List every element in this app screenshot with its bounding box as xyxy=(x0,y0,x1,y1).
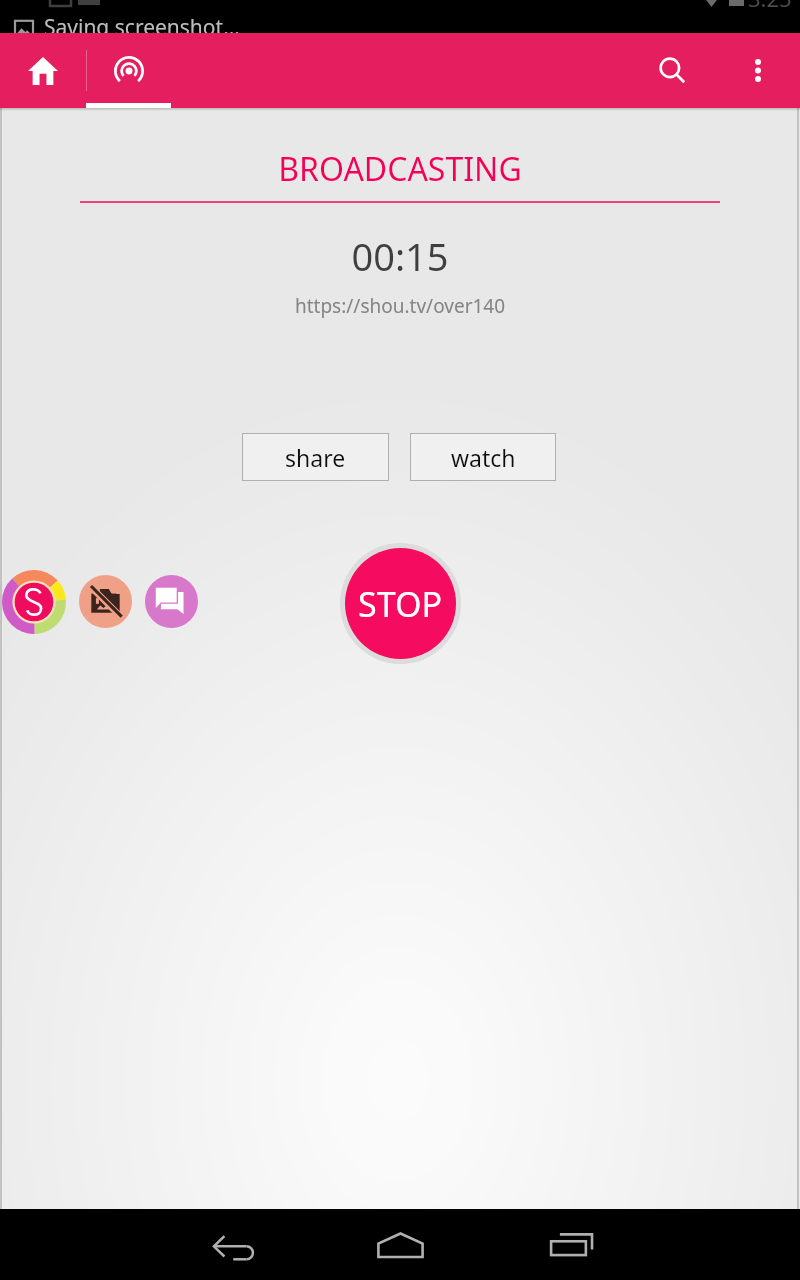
button[interactable]: Back xyxy=(190,1209,280,1280)
button[interactable]: Search xyxy=(638,33,708,108)
button[interactable]: watch xyxy=(410,433,556,481)
button[interactable]: Broadcast xyxy=(86,33,171,108)
button[interactable]: Home xyxy=(0,33,86,108)
button[interactable]: share xyxy=(242,433,389,481)
button[interactable]: STOP xyxy=(345,548,456,659)
button[interactable]: Camera off xyxy=(79,575,132,628)
staticText: BROADCASTING xyxy=(0,147,800,191)
staticText: 3:25 xyxy=(748,0,792,13)
staticText: STOP xyxy=(358,581,443,627)
button[interactable]: Chat xyxy=(145,575,198,628)
staticText: https://shou.tv/over140 xyxy=(0,293,800,319)
staticText: 00:15 xyxy=(0,230,800,282)
staticText: watch xyxy=(451,442,516,473)
button[interactable]: Home xyxy=(355,1209,445,1280)
button[interactable]: Shou xyxy=(2,570,66,634)
button[interactable]: Recent apps xyxy=(527,1209,617,1280)
staticText: share xyxy=(285,442,346,473)
button[interactable]: More options xyxy=(723,33,793,108)
staticText: Saving screenshot… xyxy=(44,13,240,42)
